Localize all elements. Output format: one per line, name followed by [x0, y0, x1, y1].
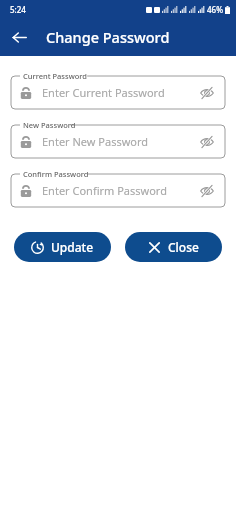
staticText: Change Password: [46, 27, 170, 47]
button[interactable]: Show password: [197, 132, 217, 152]
button[interactable]: Current Password: [11, 71, 225, 109]
button[interactable]: Back: [6, 24, 32, 50]
staticText: 46%: [207, 4, 223, 15]
button[interactable]: Update: [14, 232, 111, 262]
staticText: 5:24: [10, 4, 26, 15]
button[interactable]: Confirm Password: [11, 169, 225, 207]
staticText: Close: [168, 239, 199, 255]
button[interactable]: Show password: [197, 83, 217, 103]
staticText: Current Password: [23, 71, 87, 81]
staticText: Confirm Password: [23, 169, 89, 179]
staticText: New Password: [23, 120, 76, 130]
button[interactable]: New Password: [11, 120, 225, 158]
staticText: Enter New Password: [42, 134, 197, 149]
button[interactable]: Close: [125, 232, 222, 262]
button[interactable]: Show password: [197, 181, 217, 201]
staticText: Enter Confirm Password: [42, 183, 197, 198]
staticText: Update: [51, 239, 94, 255]
staticText: Enter Current Password: [42, 85, 197, 100]
